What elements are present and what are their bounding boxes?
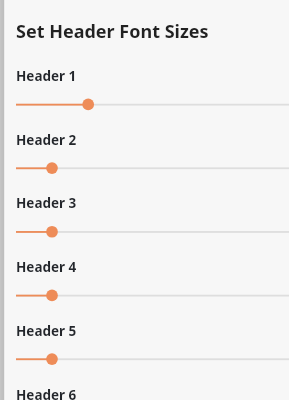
button[interactable]: Header 4 font size slider (16, 282, 289, 308)
staticText: Header 1 (16, 67, 77, 85)
staticText: Set Header Font Sizes (16, 19, 209, 44)
staticText: Header 4 (16, 258, 77, 276)
button[interactable]: Header 5 font size slider (16, 346, 289, 372)
button[interactable]: Header 2 font size slider (16, 155, 289, 181)
button[interactable]: Header 3 font size slider (16, 219, 289, 245)
staticText: Header 5 (16, 322, 77, 340)
staticText: Header 6 (16, 386, 77, 400)
staticText: Header 2 (16, 131, 77, 149)
staticText: Header 3 (16, 194, 77, 212)
button[interactable]: Header 1 font size slider (16, 91, 289, 117)
